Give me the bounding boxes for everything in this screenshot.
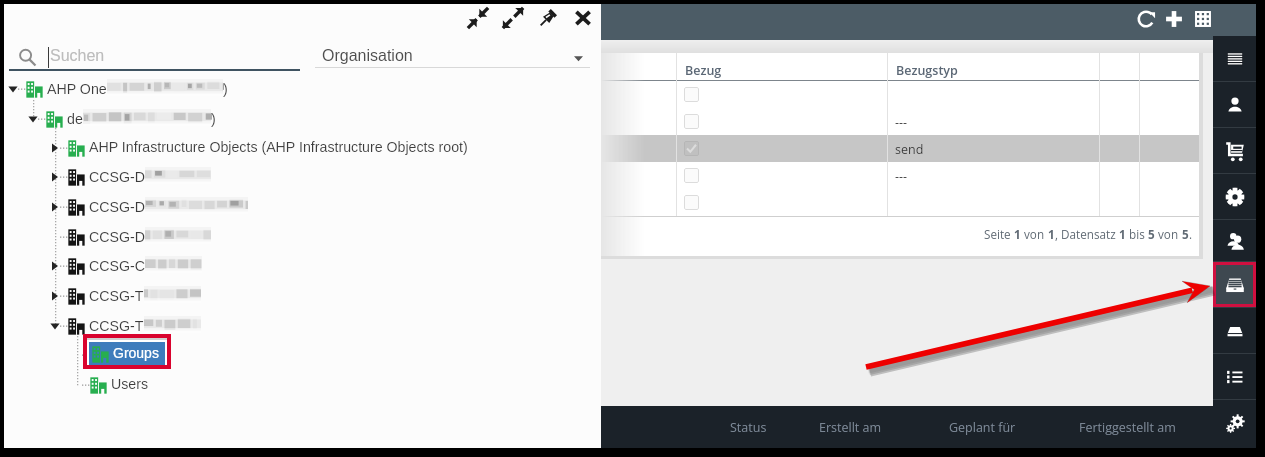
button[interactable]: CCSG-D [4, 223, 601, 251]
button[interactable]: Refresh [1135, 8, 1157, 30]
staticText: 1 [1014, 226, 1021, 242]
button[interactable]: Collapse [467, 7, 489, 29]
staticText: --- [895, 114, 908, 131]
staticText: 5 [1182, 226, 1189, 242]
button[interactable]: CCSG-D [4, 193, 601, 221]
button[interactable]: Menu [1213, 36, 1256, 81]
button[interactable]: CCSG-T [4, 312, 601, 340]
button[interactable]: Groups [4, 341, 601, 369]
button[interactable]: --- [4, 162, 1199, 189]
button[interactable]: AHP Infrastructure Objects (AHP Infrastr… [4, 134, 601, 162]
staticText: bis [1126, 226, 1148, 242]
staticText: de [67, 111, 83, 127]
button[interactable] [4, 189, 1199, 216]
button[interactable]: Organisation [315, 40, 590, 73]
staticText: Seite [984, 226, 1014, 242]
staticText: 1 [1119, 226, 1126, 242]
staticText: Suchen [50, 47, 105, 65]
button[interactable]: Geplant für [922, 416, 1042, 438]
button[interactable]: Fertiggestellt am [1067, 416, 1187, 438]
button[interactable]: Cart [1213, 128, 1256, 173]
button[interactable]: Tray [1213, 308, 1256, 353]
staticText: Organisation [322, 47, 413, 65]
staticText: ) [223, 81, 228, 97]
button[interactable]: Close [572, 7, 594, 29]
staticText: --- [895, 168, 908, 185]
staticText: 1 [1048, 226, 1055, 242]
staticText: CCSG-D [89, 169, 145, 185]
staticText: Erstellt am [819, 419, 882, 436]
staticText: AHP Infrastructure Objects (AHP Infrastr… [89, 139, 468, 155]
button[interactable]: CCSG-D [4, 163, 601, 191]
button[interactable]: Pin [537, 7, 559, 29]
staticText: AHP One [47, 81, 107, 97]
button[interactable]: Expand [502, 7, 524, 29]
staticText: Users [111, 376, 149, 392]
button[interactable]: List [1213, 354, 1256, 399]
button[interactable]: Users [1213, 220, 1256, 261]
button[interactable]: Status [688, 416, 808, 438]
button[interactable]: User [1213, 82, 1256, 127]
button[interactable]: send [4, 135, 1199, 162]
staticText: , Datensatz [1055, 226, 1119, 242]
staticText: ) [211, 111, 216, 127]
button[interactable]: --- [4, 108, 1199, 135]
staticText: von [1155, 226, 1182, 242]
button[interactable] [4, 81, 1199, 108]
staticText: von [1021, 226, 1048, 242]
button[interactable]: Suchen [9, 40, 300, 75]
button[interactable]: CCSG-T [4, 282, 601, 310]
button[interactable]: Erstellt am [790, 416, 910, 438]
staticText: Status [730, 419, 767, 436]
button[interactable]: Settings [1213, 174, 1256, 219]
staticText: Fertiggestellt am [1079, 419, 1176, 436]
staticText: send [895, 141, 924, 158]
button[interactable]: Inbox [1213, 262, 1256, 307]
staticText: Bezugstyp [896, 62, 958, 79]
button[interactable]: Add [1163, 8, 1185, 30]
button[interactable]: CCSG-C [4, 252, 601, 280]
staticText: 5 [1148, 226, 1155, 242]
staticText: CCSG-T [89, 288, 144, 304]
staticText: . [1189, 226, 1193, 242]
staticText: Groups [113, 345, 159, 361]
staticText: Bezug [685, 62, 722, 79]
staticText: CCSG-D [89, 229, 145, 245]
button[interactable]: Grid [1192, 8, 1214, 30]
staticText: CCSG-D [89, 199, 145, 215]
staticText: CCSG-T [89, 318, 144, 334]
staticText: CCSG-C [89, 258, 145, 274]
button[interactable]: AHP One [4, 75, 601, 103]
button[interactable]: Users [4, 371, 601, 399]
button[interactable]: Gears [1213, 400, 1256, 448]
staticText: Geplant für [949, 419, 1016, 436]
button[interactable]: de [4, 105, 601, 133]
